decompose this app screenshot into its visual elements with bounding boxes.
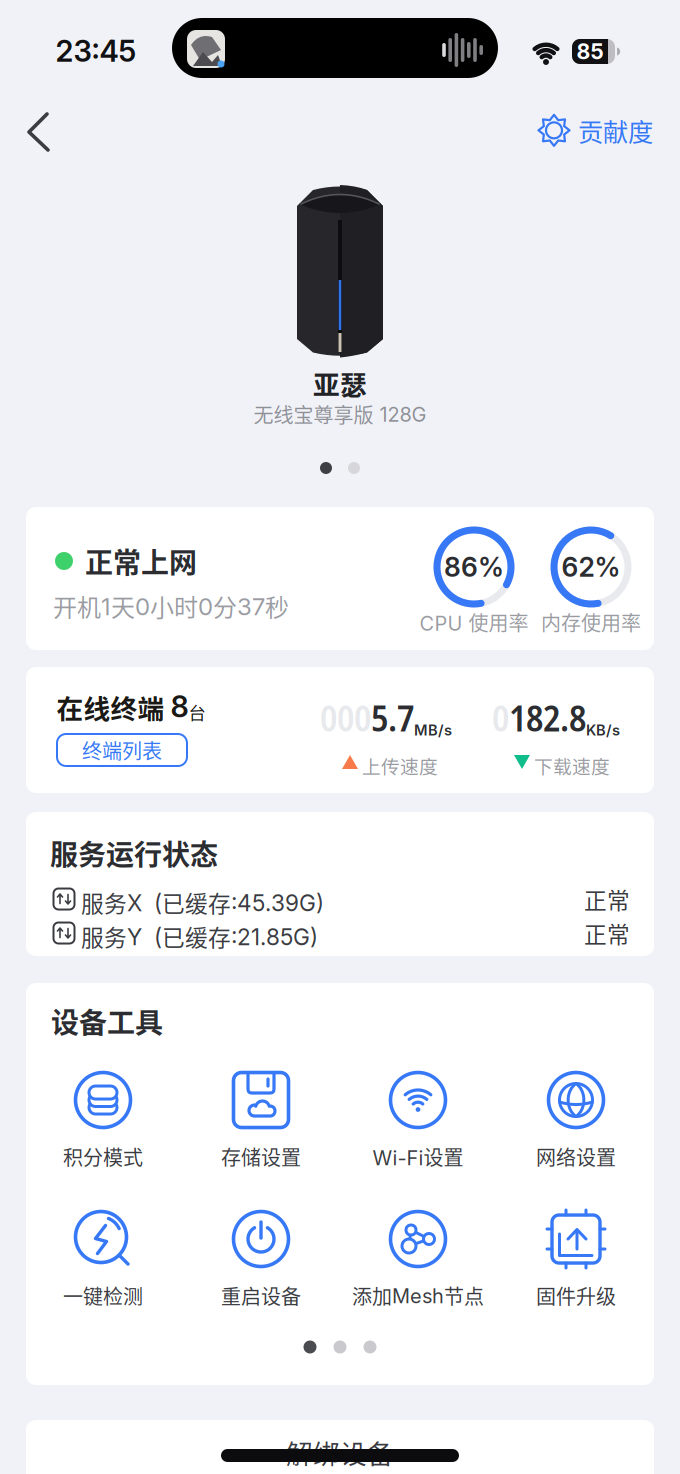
button[interactable]: 固件升级 bbox=[536, 1208, 616, 1310]
staticText: 一键检测 bbox=[63, 1281, 143, 1310]
button[interactable]: Wi-Fi设置 bbox=[372, 1069, 463, 1171]
button[interactable]: 存储设置 bbox=[221, 1069, 301, 1171]
button[interactable]: 终端列表 bbox=[57, 734, 187, 766]
staticText: MB/s bbox=[414, 721, 452, 739]
staticText: 85 bbox=[576, 39, 603, 64]
staticText: 5.7 bbox=[371, 693, 414, 742]
staticText: 服务X (已缓存:45.39G) bbox=[81, 886, 324, 919]
staticText: 网络设置 bbox=[536, 1142, 616, 1171]
staticText: 000 bbox=[320, 693, 371, 742]
button[interactable]: 添加Mesh节点 bbox=[352, 1208, 484, 1310]
staticText: 固件升级 bbox=[536, 1281, 616, 1310]
staticText: 在线终端 8台 bbox=[56, 688, 205, 726]
staticText: 23:45 bbox=[55, 33, 136, 69]
button[interactable]: Back bbox=[21, 107, 61, 157]
staticText: 上传速度 bbox=[362, 752, 438, 779]
staticText: 无线宝尊享版 128G bbox=[253, 399, 426, 428]
staticText: Wi-Fi设置 bbox=[372, 1142, 463, 1171]
staticText: 正常上网 bbox=[85, 541, 197, 581]
staticText: 182.8 bbox=[509, 693, 586, 742]
button[interactable]: 一键检测 bbox=[63, 1208, 143, 1310]
staticText: 贡献度 bbox=[578, 112, 653, 149]
staticText: 存储设置 bbox=[221, 1142, 301, 1171]
staticText: 解绑设备 bbox=[286, 1433, 394, 1471]
staticText: 下载速度 bbox=[534, 752, 610, 779]
staticText: 重启设备 bbox=[221, 1281, 301, 1310]
staticText: CPU 使用率 bbox=[419, 607, 528, 636]
button[interactable]: 网络设置 bbox=[536, 1069, 616, 1171]
staticText: 86% bbox=[444, 551, 504, 583]
button[interactable]: 解绑设备 bbox=[26, 1420, 654, 1474]
staticText: KB/s bbox=[586, 721, 620, 739]
staticText: 62% bbox=[561, 551, 620, 583]
staticText: 正常 bbox=[584, 883, 630, 915]
staticText: 正常 bbox=[584, 917, 630, 949]
staticText: 服务Y (已缓存:21.85G) bbox=[81, 920, 318, 953]
staticText: 0 bbox=[492, 693, 509, 742]
button[interactable]: 贡献度 bbox=[536, 112, 653, 149]
staticText: 终端列表 bbox=[82, 735, 162, 764]
staticText: 积分模式 bbox=[63, 1142, 143, 1171]
staticText: 亚瑟 bbox=[313, 364, 367, 402]
staticText: 设备工具 bbox=[51, 1001, 163, 1041]
button[interactable]: 重启设备 bbox=[221, 1208, 301, 1310]
staticText: 开机1天0小时0分37秒 bbox=[53, 589, 289, 623]
staticText: 服务运行状态 bbox=[50, 833, 218, 873]
staticText: 内存使用率 bbox=[541, 607, 641, 636]
button[interactable]: 积分模式 bbox=[63, 1069, 143, 1171]
staticText: 添加Mesh节点 bbox=[352, 1281, 484, 1310]
